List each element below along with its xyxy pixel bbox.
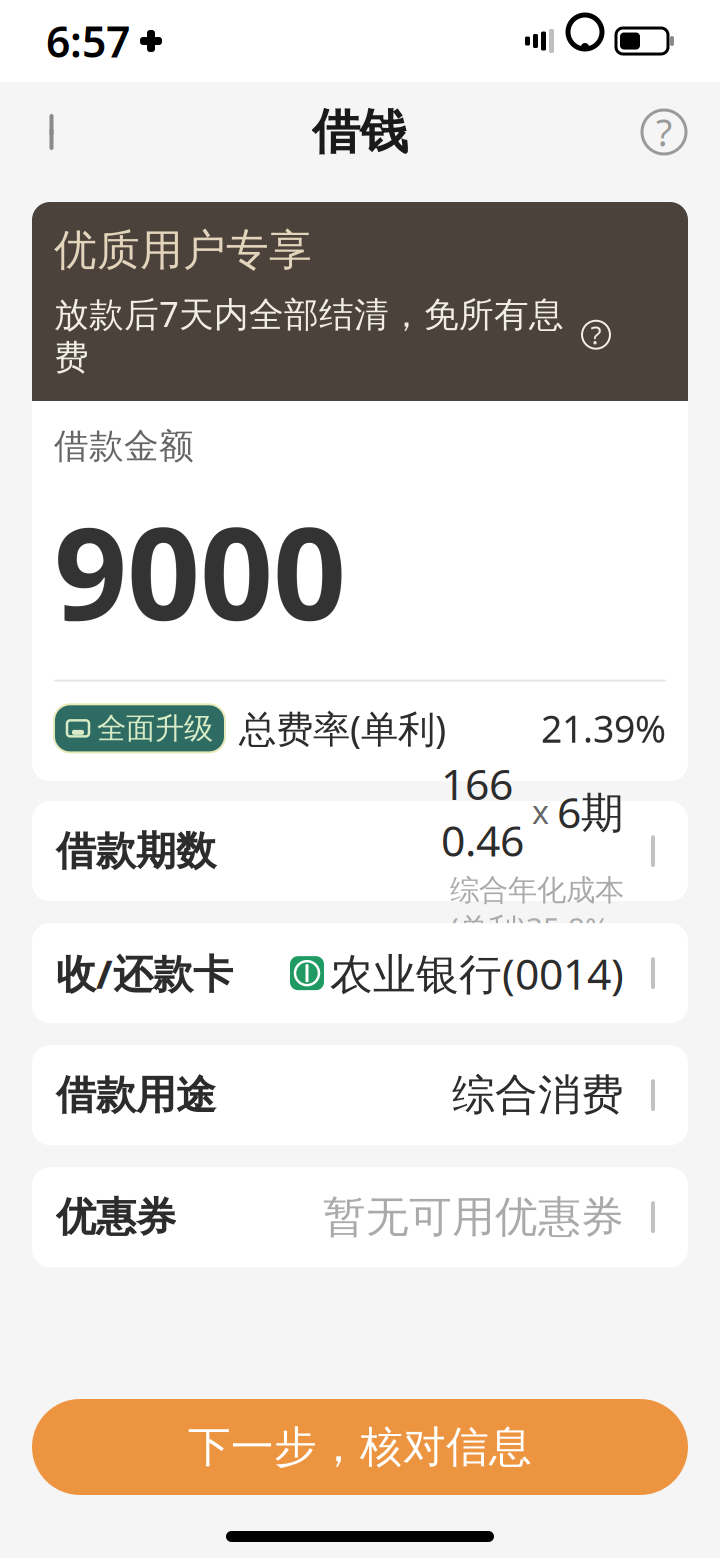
button[interactable]: 帮助 — [628, 96, 700, 168]
staticText: 6期 — [557, 783, 624, 840]
staticText: x — [532, 790, 549, 833]
staticText: 放款后7天内全部结清，免所有息费 — [54, 290, 564, 379]
staticText: 收/还款卡 — [56, 947, 233, 1000]
staticText: 借款期数 — [56, 827, 216, 876]
staticText: 9000 — [54, 486, 346, 656]
button[interactable]: 借款用途 — [32, 1045, 688, 1145]
staticText: 借款金额 — [54, 425, 194, 468]
staticText: 暂无可用优惠券 — [323, 1191, 624, 1243]
staticText: 21.39% — [541, 704, 666, 753]
staticText: 优惠券 — [56, 1193, 176, 1242]
staticText: 综合年化成本(单利)35.8% — [450, 872, 624, 947]
staticText: 6:57 — [46, 13, 130, 69]
staticText: 借款用途 — [56, 1071, 216, 1120]
staticText: 总费率(单利) — [239, 704, 446, 753]
staticText: 下一步，核对信息 — [188, 1421, 532, 1473]
staticText: 优质用户专享 — [54, 224, 312, 276]
button[interactable]: 优惠券 — [32, 1167, 688, 1267]
button[interactable]: 返回 — [20, 96, 92, 168]
staticText: ? — [590, 318, 601, 351]
staticText: 借钱 — [312, 102, 408, 161]
staticText: 全面升级 — [97, 710, 213, 746]
staticText: 综合消费 — [452, 1069, 624, 1121]
staticText: ? — [656, 107, 672, 157]
button[interactable]: 下一步，核对信息 — [32, 1399, 688, 1495]
button[interactable]: 借款期数 — [32, 801, 688, 901]
button[interactable]: 收/还款卡 — [32, 923, 688, 1023]
staticText: 1660.46 — [441, 755, 524, 868]
button[interactable]: 息费说明 — [578, 317, 614, 353]
staticText: 农业银行(0014) — [330, 945, 624, 1001]
